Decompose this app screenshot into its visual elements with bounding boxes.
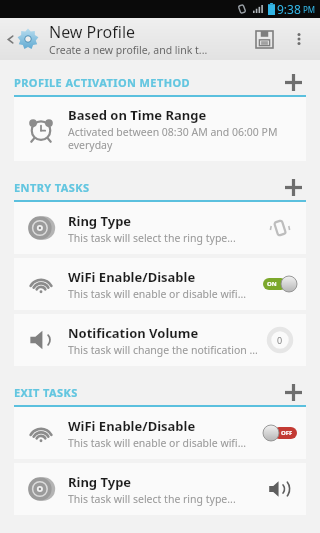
staticText: WiFi Enable/Disable — [68, 417, 196, 435]
button[interactable]: More options — [284, 24, 314, 54]
button[interactable]: Add — [280, 70, 306, 94]
button[interactable]: Volume level — [267, 327, 293, 353]
staticText: This task will enable or disable wifi... — [68, 287, 247, 301]
staticText: 0 — [277, 334, 283, 346]
button[interactable]: Notification Volume — [14, 314, 306, 366]
staticText: EXIT TASKS — [14, 385, 280, 400]
staticText: This task will change the notification v… — [68, 343, 258, 357]
staticText: Notification Volume — [68, 324, 199, 342]
button[interactable]: Add — [280, 175, 306, 199]
button[interactable]: Based on Time Range — [14, 97, 306, 161]
staticText: Activated between 08:30 AM and 06:00 PM … — [68, 125, 278, 152]
staticText: Ring Type — [68, 473, 132, 491]
staticText: New Profile — [49, 21, 136, 43]
staticText: This task will enable or disable wifi... — [68, 436, 247, 450]
staticText: Create a new profile, and link t... — [49, 43, 208, 57]
button[interactable]: Navigate up — [4, 28, 41, 50]
button[interactable]: Save — [244, 19, 284, 59]
staticText: ON — [267, 280, 277, 288]
button[interactable]: WiFi Enable/Disable — [14, 258, 306, 310]
staticText: Ring Type — [68, 212, 132, 230]
staticText: WiFi Enable/Disable — [68, 268, 196, 286]
staticText: PM — [303, 4, 316, 15]
staticText: This task will select the ring type... — [68, 492, 236, 506]
button[interactable]: Add — [280, 380, 306, 404]
staticText: PROFILE ACTIVATION METHOD — [14, 75, 280, 90]
staticText: 9:38 — [277, 1, 301, 17]
staticText: Based on Time Range — [68, 106, 207, 124]
button[interactable]: Toggle on — [263, 276, 297, 292]
button[interactable]: WiFi Enable/Disable — [14, 407, 306, 459]
staticText: OFF — [281, 429, 293, 437]
button[interactable]: Ring Type — [14, 463, 306, 515]
button[interactable]: Ring Type — [14, 202, 306, 254]
staticText: This task will select the ring type... — [68, 231, 236, 245]
button[interactable]: Toggle off — [263, 425, 297, 441]
staticText: ENTRY TASKS — [14, 180, 280, 195]
